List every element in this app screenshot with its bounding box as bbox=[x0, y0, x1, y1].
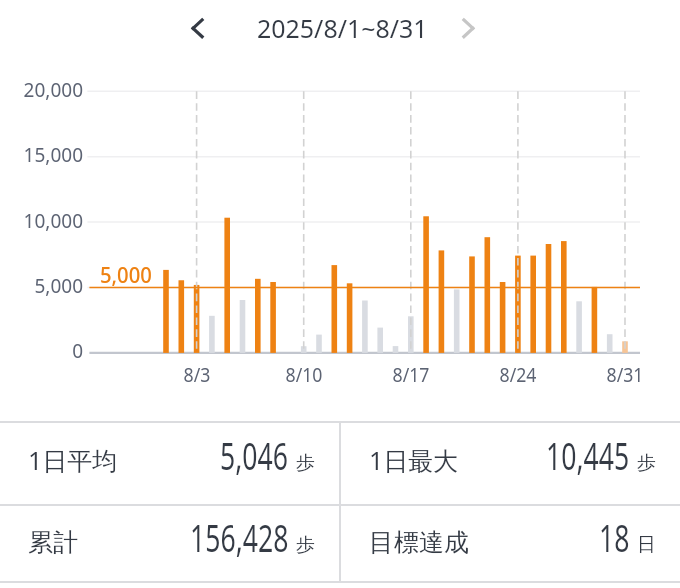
staticText: 目標達成 bbox=[369, 527, 469, 558]
staticText: 156,428 bbox=[190, 511, 289, 563]
staticText: 15,000 bbox=[0, 142, 83, 168]
staticText: 1日平均 bbox=[28, 443, 118, 477]
staticText: 歩 bbox=[637, 451, 656, 475]
staticText: 5,000 bbox=[0, 273, 83, 299]
button[interactable]: 目標達成 bbox=[341, 505, 680, 581]
staticText: 2025/8/1~8/31 bbox=[257, 10, 428, 45]
staticText: 8/3 bbox=[160, 362, 234, 388]
staticText: 累計 bbox=[28, 527, 78, 558]
staticText: 18 bbox=[599, 511, 630, 563]
button[interactable]: 1日平均 bbox=[0, 423, 339, 504]
staticText: 8/10 bbox=[267, 362, 341, 388]
staticText: 歩 bbox=[296, 533, 315, 557]
button[interactable]: 累計 bbox=[0, 505, 339, 581]
button[interactable]: Previous month bbox=[177, 8, 217, 48]
staticText: 8/24 bbox=[481, 362, 555, 388]
staticText: 5,046 bbox=[220, 429, 289, 481]
staticText: 1日最大 bbox=[369, 443, 459, 477]
staticText: 0 bbox=[0, 338, 83, 364]
staticText: 8/31 bbox=[588, 362, 662, 388]
button[interactable]: Next month bbox=[449, 8, 489, 48]
staticText: 8/17 bbox=[374, 362, 448, 388]
staticText: 日 bbox=[637, 533, 656, 557]
staticText: 10,445 bbox=[546, 429, 629, 481]
button[interactable]: 1日最大 bbox=[341, 423, 680, 504]
staticText: 歩 bbox=[296, 451, 315, 475]
staticText: 5,000 bbox=[100, 259, 152, 289]
staticText: 10,000 bbox=[0, 208, 83, 234]
staticText: 20,000 bbox=[0, 77, 83, 103]
